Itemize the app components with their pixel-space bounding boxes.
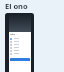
button[interactable]: El ono bbox=[5, 1, 28, 11]
button[interactable] bbox=[10, 58, 30, 61]
button[interactable] bbox=[9, 46, 31, 49]
button[interactable] bbox=[9, 40, 31, 43]
button[interactable] bbox=[9, 43, 31, 46]
button[interactable] bbox=[9, 37, 31, 40]
staticText: Title bbox=[10, 33, 15, 36]
button[interactable] bbox=[9, 52, 31, 55]
button[interactable] bbox=[9, 49, 31, 52]
